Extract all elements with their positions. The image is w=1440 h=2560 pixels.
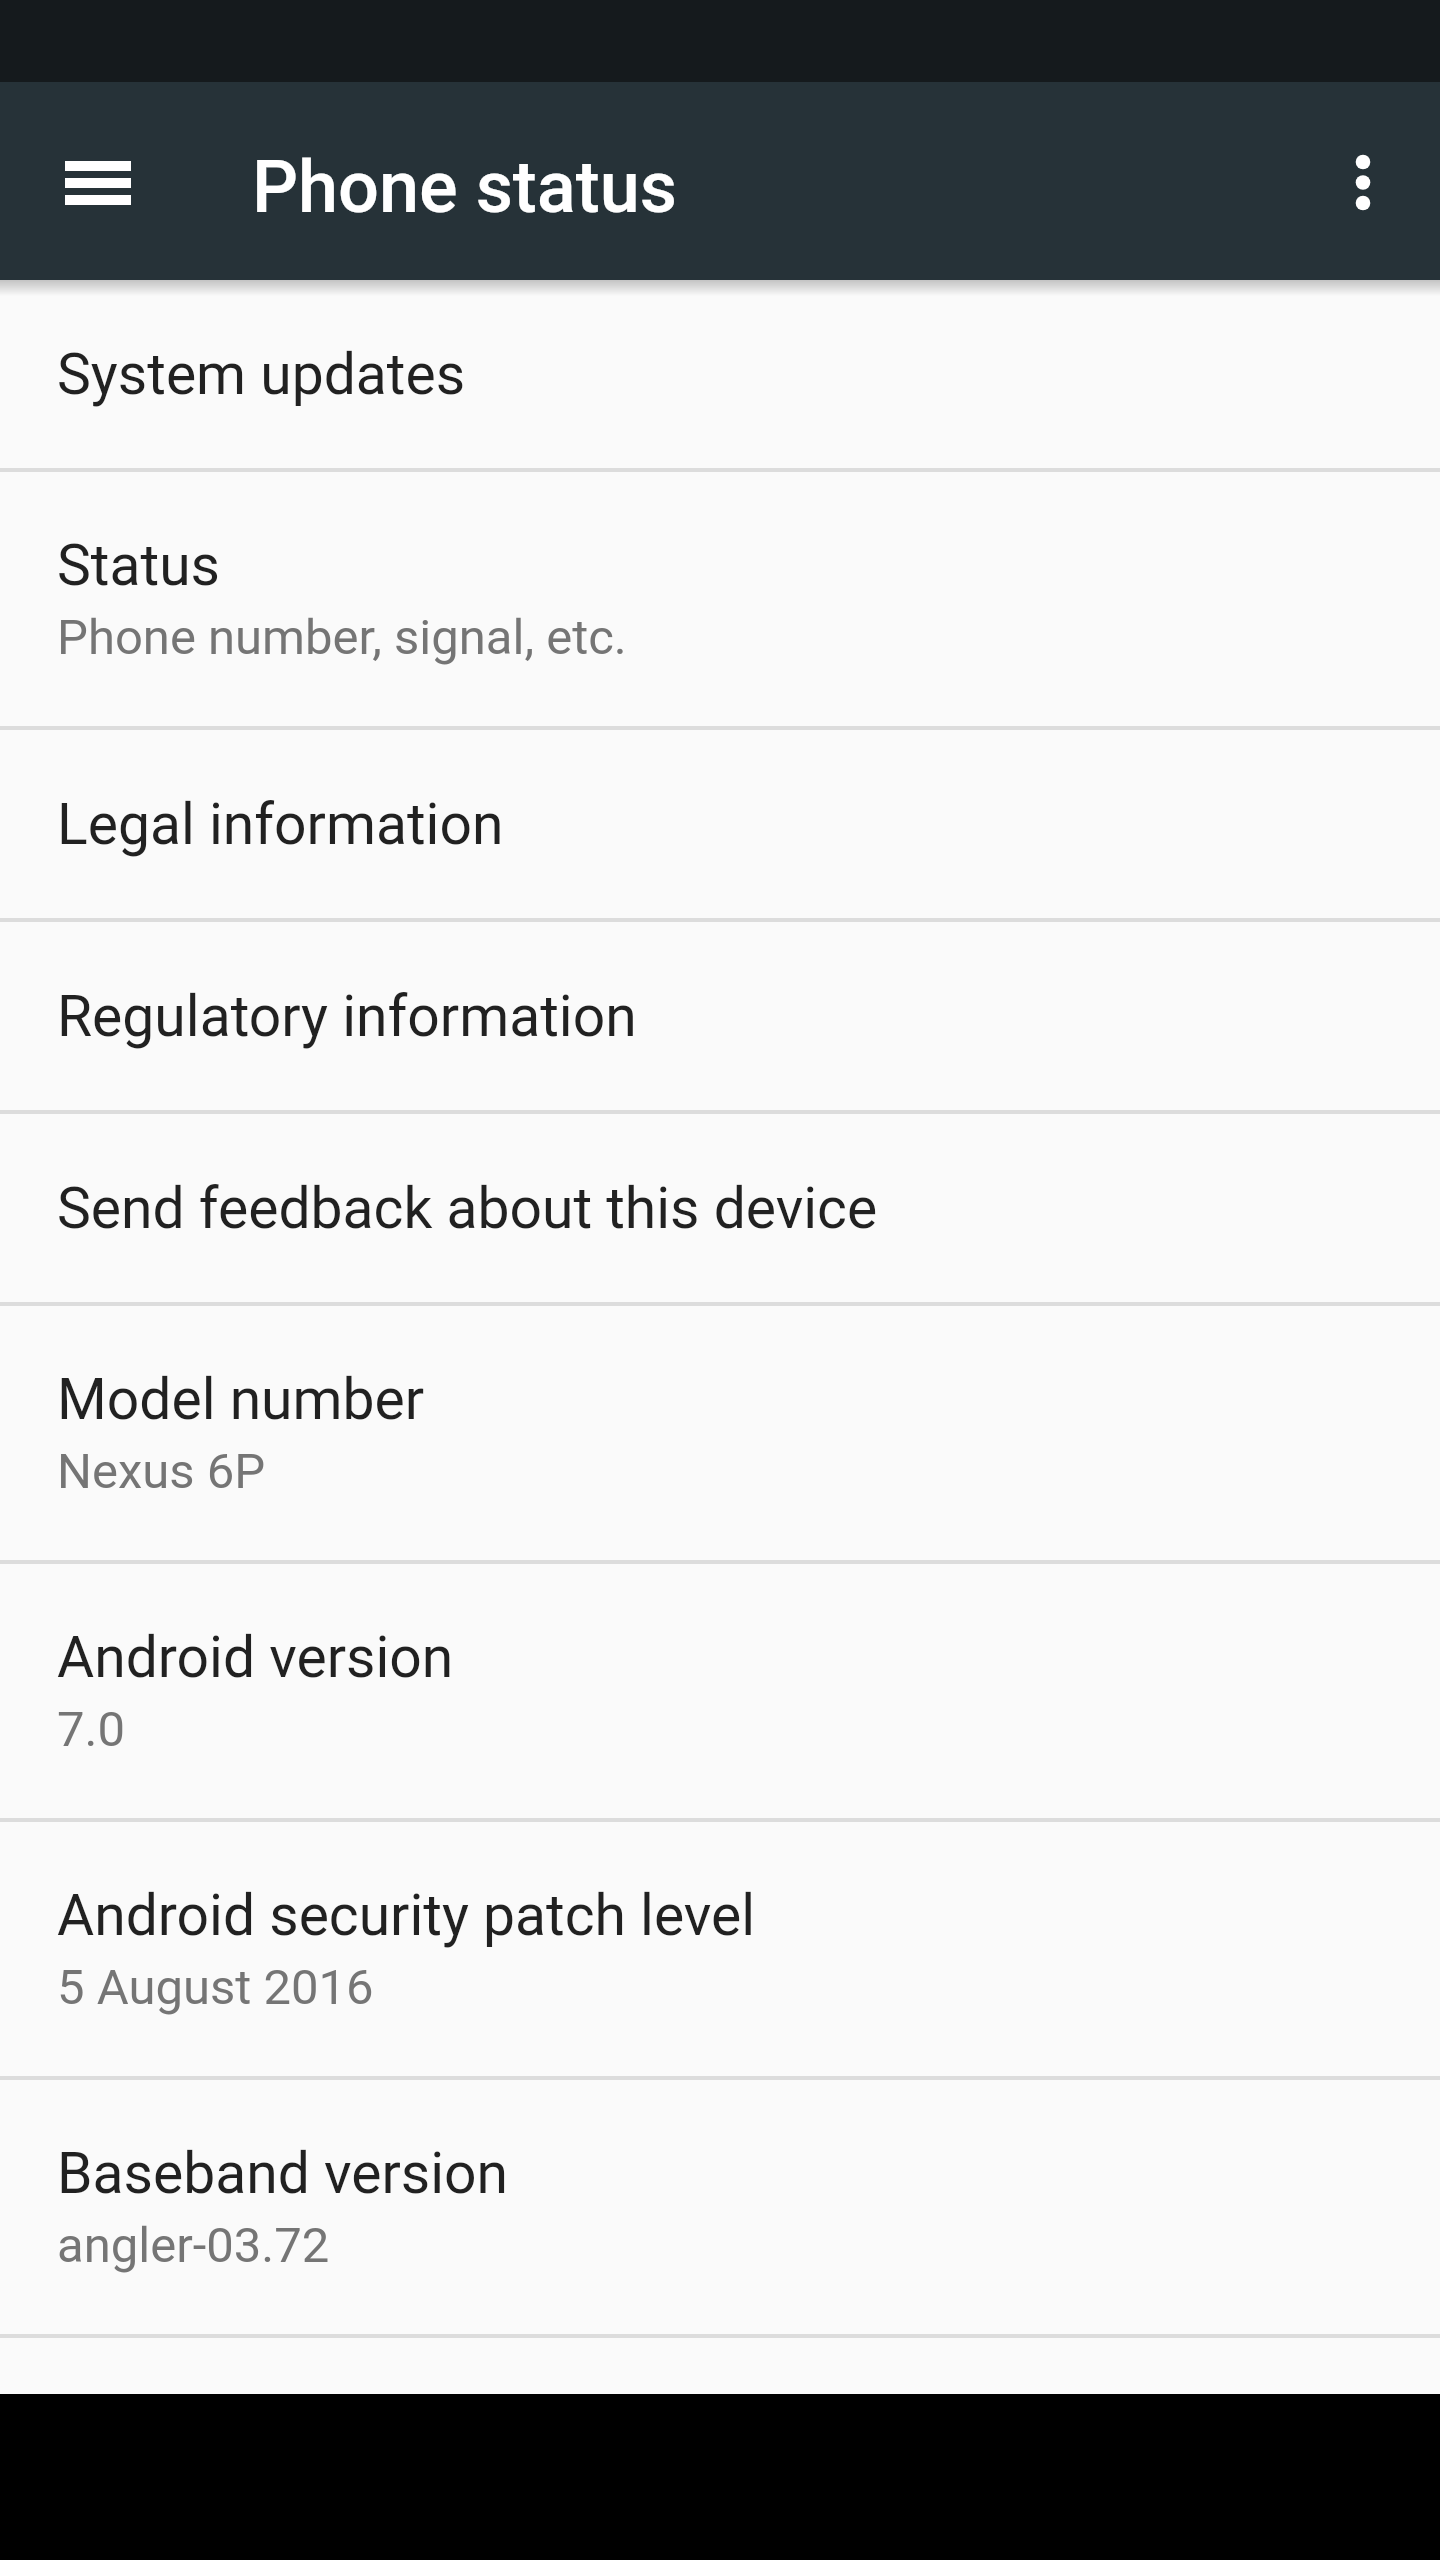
staticText: Send feedback about this device: [57, 1175, 878, 1242]
button[interactable]: Baseband version: [0, 2080, 1440, 2334]
button[interactable]: Android version: [0, 1564, 1440, 1818]
staticText: Legal information: [57, 791, 504, 858]
staticText: Android security patch level: [57, 1882, 756, 1949]
button[interactable]: Send feedback about this device: [0, 1114, 1440, 1302]
button[interactable]: System updates: [0, 280, 1440, 468]
staticText: Status: [57, 532, 220, 599]
staticText: Regulatory information: [57, 983, 637, 1050]
staticText: System updates: [57, 341, 466, 408]
button[interactable]: Status: [0, 472, 1440, 726]
staticText: Nexus 6P: [57, 1443, 266, 1500]
staticText: 7.0: [57, 1701, 125, 1758]
button[interactable]: Model number: [0, 1306, 1440, 1560]
button[interactable]: [1314, 133, 1412, 231]
staticText: 5 August 2016: [57, 1959, 374, 2016]
staticText: Phone status: [252, 145, 677, 229]
button[interactable]: Regulatory information: [0, 922, 1440, 1110]
staticText: angler-03.72: [57, 2217, 330, 2274]
button[interactable]: Android security patch level: [0, 1822, 1440, 2076]
button[interactable]: Legal information: [0, 730, 1440, 918]
staticText: Android version: [57, 1624, 454, 1691]
staticText: Baseband version: [57, 2140, 508, 2207]
button[interactable]: [49, 154, 147, 222]
staticText: Phone number, signal, etc.: [57, 609, 627, 666]
staticText: Model number: [57, 1366, 425, 1433]
